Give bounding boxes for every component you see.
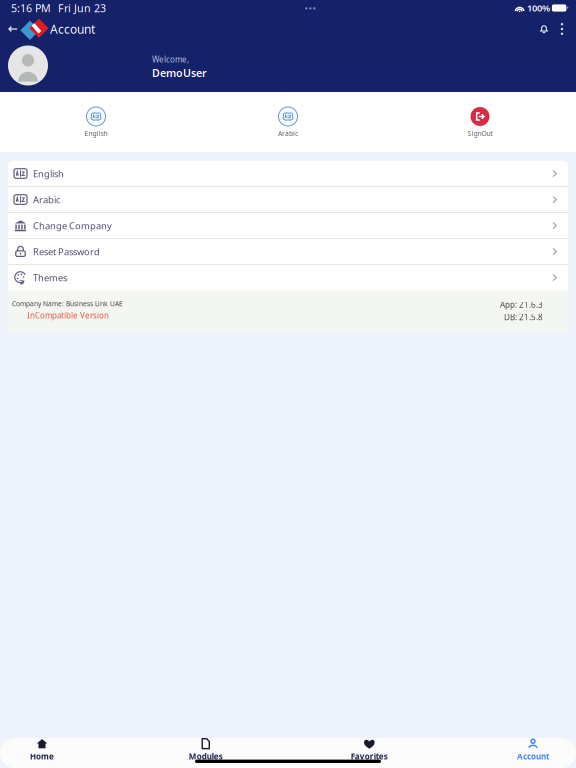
button[interactable]: Reset Password — [8, 239, 568, 264]
button[interactable]: Home — [30, 738, 54, 762]
button[interactable]: Themes — [8, 265, 568, 290]
staticText: Account — [50, 21, 95, 37]
button[interactable]: Modules — [189, 738, 223, 762]
staticText: 100% — [527, 2, 550, 14]
button[interactable]: More options — [554, 18, 570, 40]
staticText: Reset Password — [33, 245, 100, 258]
staticText: DemoUser — [152, 66, 207, 80]
button[interactable]: Arabic — [278, 107, 298, 138]
staticText: Favorites — [351, 751, 388, 762]
staticText: Modules — [189, 751, 223, 762]
staticText: App: 21.6.3 — [500, 299, 543, 310]
staticText: Themes — [33, 271, 67, 284]
button[interactable]: Account — [517, 738, 549, 762]
staticText: Arabic — [33, 193, 60, 206]
staticText: ••• — [304, 2, 316, 14]
button[interactable]: Favorites — [351, 738, 388, 762]
staticText: Fri Jun 23 — [58, 1, 106, 15]
button[interactable]: Change Company — [8, 213, 568, 238]
staticText: Welcome, — [152, 54, 189, 65]
button[interactable]: English — [84, 107, 107, 138]
button[interactable]: Notifications — [534, 18, 554, 40]
staticText: InCompatible Version — [27, 310, 109, 321]
staticText: SignOut — [467, 129, 492, 138]
staticText: Home — [30, 751, 54, 762]
staticText: Arabic — [278, 129, 298, 138]
staticText: 5:16 PM — [11, 1, 51, 15]
button[interactable]: English — [8, 161, 568, 186]
button[interactable]: Back — [5, 19, 21, 39]
staticText: English — [33, 167, 64, 180]
staticText: Change Company — [33, 219, 112, 232]
staticText: Company Name: Business Link UAE — [12, 299, 123, 308]
button[interactable]: Arabic — [8, 187, 568, 212]
staticText: Account — [517, 751, 549, 762]
button[interactable]: SignOut — [467, 107, 492, 138]
staticText: DB: 21.5.8 — [504, 312, 543, 322]
staticText: English — [84, 129, 107, 138]
